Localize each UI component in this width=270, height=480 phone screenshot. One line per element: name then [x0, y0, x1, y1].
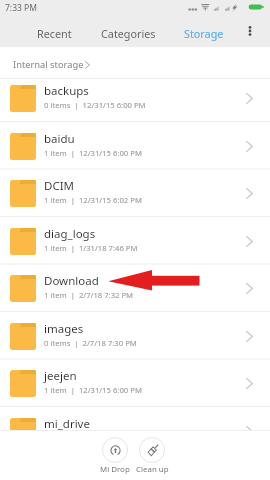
button[interactable]: Internal storage [13, 58, 90, 71]
button[interactable]: Categories [99, 21, 158, 46]
button[interactable]: More options [238, 19, 262, 43]
staticText: Mi Drop [100, 464, 130, 475]
staticText: 1 item | 2/7/18 7:32 PM [44, 290, 134, 300]
button[interactable]: diag_logs [0, 217, 270, 265]
staticText: 1 item | 12/31/15 6:00 PM [44, 385, 142, 395]
staticText: jeejen [44, 368, 77, 384]
button[interactable]: images [0, 312, 270, 360]
staticText: Download [44, 273, 99, 289]
staticText: 1 item | 12/31/15 6:00 PM [44, 148, 142, 158]
button[interactable]: Storage [182, 21, 226, 46]
button[interactable]: Recent [35, 21, 74, 46]
staticText: backups [44, 83, 89, 99]
button[interactable]: jeejen [0, 359, 270, 407]
staticText: 0 items | 12/31/15 6:00 PM [44, 100, 146, 110]
staticText: diag_logs [44, 226, 96, 242]
staticText: DCIM [44, 178, 74, 194]
button[interactable]: backups [0, 79, 270, 122]
button[interactable]: Download [0, 264, 270, 312]
staticText: Internal storage [13, 58, 84, 71]
button[interactable]: Clean up [132, 437, 172, 475]
button[interactable]: baidu [0, 122, 270, 170]
staticText: Recent [37, 26, 72, 41]
button[interactable]: Mi Drop [95, 437, 135, 475]
staticText: mi_drive [44, 416, 90, 430]
staticText: images [44, 321, 84, 337]
button[interactable]: DCIM [0, 169, 270, 217]
staticText: 7:33 PM [5, 2, 37, 14]
staticText: Storage [184, 26, 224, 41]
staticText: 1 item | 1/31/18 7:46 PM [44, 243, 138, 253]
staticText: 0 items | 2/7/18 7:30 PM [44, 338, 137, 348]
staticText: 1 item | 12/31/15 6:02 PM [44, 195, 142, 205]
staticText: Categories [101, 26, 156, 41]
staticText: baidu [44, 131, 75, 147]
staticText: Clean up [136, 464, 169, 475]
button[interactable]: mi_drive [0, 407, 270, 430]
